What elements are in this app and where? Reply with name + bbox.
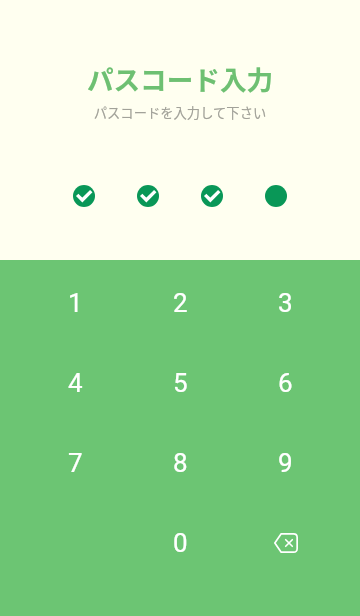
staticText: 1 [68, 288, 83, 318]
staticText: 7 [68, 448, 83, 478]
staticText: 9 [278, 448, 293, 478]
button[interactable]: 8 [128, 423, 233, 503]
button[interactable]: 1 [22, 263, 128, 343]
staticText: 3 [278, 288, 293, 318]
button[interactable]: 4 [22, 343, 128, 423]
button[interactable]: 2 [128, 263, 233, 343]
button[interactable]: 7 [22, 423, 128, 503]
button[interactable]: 5 [128, 343, 233, 423]
staticText: 8 [173, 448, 188, 478]
staticText: 5 [173, 368, 188, 398]
button[interactable]: 6 [233, 343, 338, 423]
button[interactable]: 0 [128, 503, 233, 583]
staticText: 6 [278, 368, 293, 398]
staticText: パスコードを入力して下さい [0, 103, 360, 122]
staticText: パスコード入力 [0, 59, 360, 98]
button[interactable]: 9 [233, 423, 338, 503]
button[interactable]: Backspace [233, 503, 338, 583]
staticText: 0 [173, 528, 188, 558]
staticText: 4 [68, 368, 83, 398]
staticText: 2 [173, 288, 188, 318]
button[interactable]: 3 [233, 263, 338, 343]
